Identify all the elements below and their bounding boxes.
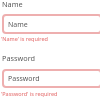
staticText: Password (2, 53, 36, 63)
button[interactable]: Password (2, 69, 100, 88)
staticText: 'Password' is required (1, 90, 58, 97)
staticText: 'Name' is required (1, 35, 48, 42)
staticText: Name (8, 20, 28, 30)
button[interactable]: Name (2, 14, 100, 34)
staticText: Name (2, 0, 23, 9)
staticText: Password (8, 74, 40, 84)
